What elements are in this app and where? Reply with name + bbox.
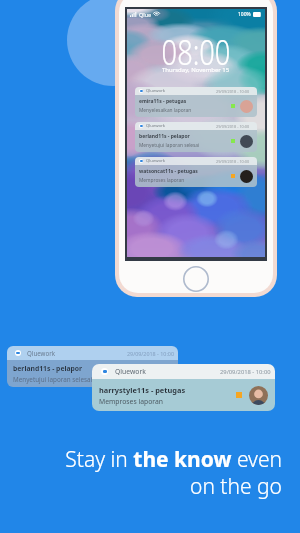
staticText: 100% — [238, 11, 251, 18]
button[interactable]: Qluework — [135, 157, 257, 187]
staticText: emira11s - petugas — [139, 98, 187, 105]
staticText: Qluework — [27, 349, 56, 357]
staticText: Stay in the know even on the go — [18, 445, 282, 500]
staticText: Qluework — [146, 88, 166, 94]
button[interactable]: Qluework — [135, 87, 257, 117]
staticText: Thursday, November 15 — [162, 66, 230, 74]
staticText: 29/09/2018 - 10:00 — [220, 368, 271, 376]
staticText: Qluework — [146, 158, 166, 164]
staticText: Qluework — [146, 123, 166, 129]
staticText: 29/09/2018 - 10:00 — [216, 89, 250, 94]
button[interactable]: Qluework — [135, 122, 257, 152]
staticText: Qluework — [115, 367, 146, 376]
button[interactable]: Qluework — [92, 364, 275, 411]
staticText: 08:00 — [162, 29, 230, 75]
staticText: 29/09/2018 - 10:00 — [127, 350, 174, 357]
staticText: 29/09/2018 - 10:00 — [216, 159, 250, 164]
staticText: Qlue — [139, 11, 152, 18]
staticText: watsoncat11s - petugas — [139, 168, 198, 175]
staticText: berland11s - pelapor — [13, 364, 83, 373]
staticText: Menyetujui laporan selesai — [139, 142, 200, 149]
staticText: 29/09/2018 - 10:00 — [216, 124, 250, 129]
staticText: Memproses laporan — [99, 397, 163, 406]
staticText: Memproses laporan — [139, 177, 185, 184]
staticText: Menyelesaikan laporan — [139, 107, 192, 114]
staticText: harrystyle11s - petugas — [99, 385, 186, 395]
staticText: berland11s - pelapor — [139, 133, 190, 140]
staticText: Menyetujui laporan selesai — [13, 375, 93, 384]
button[interactable]: Qluework — [7, 346, 178, 387]
